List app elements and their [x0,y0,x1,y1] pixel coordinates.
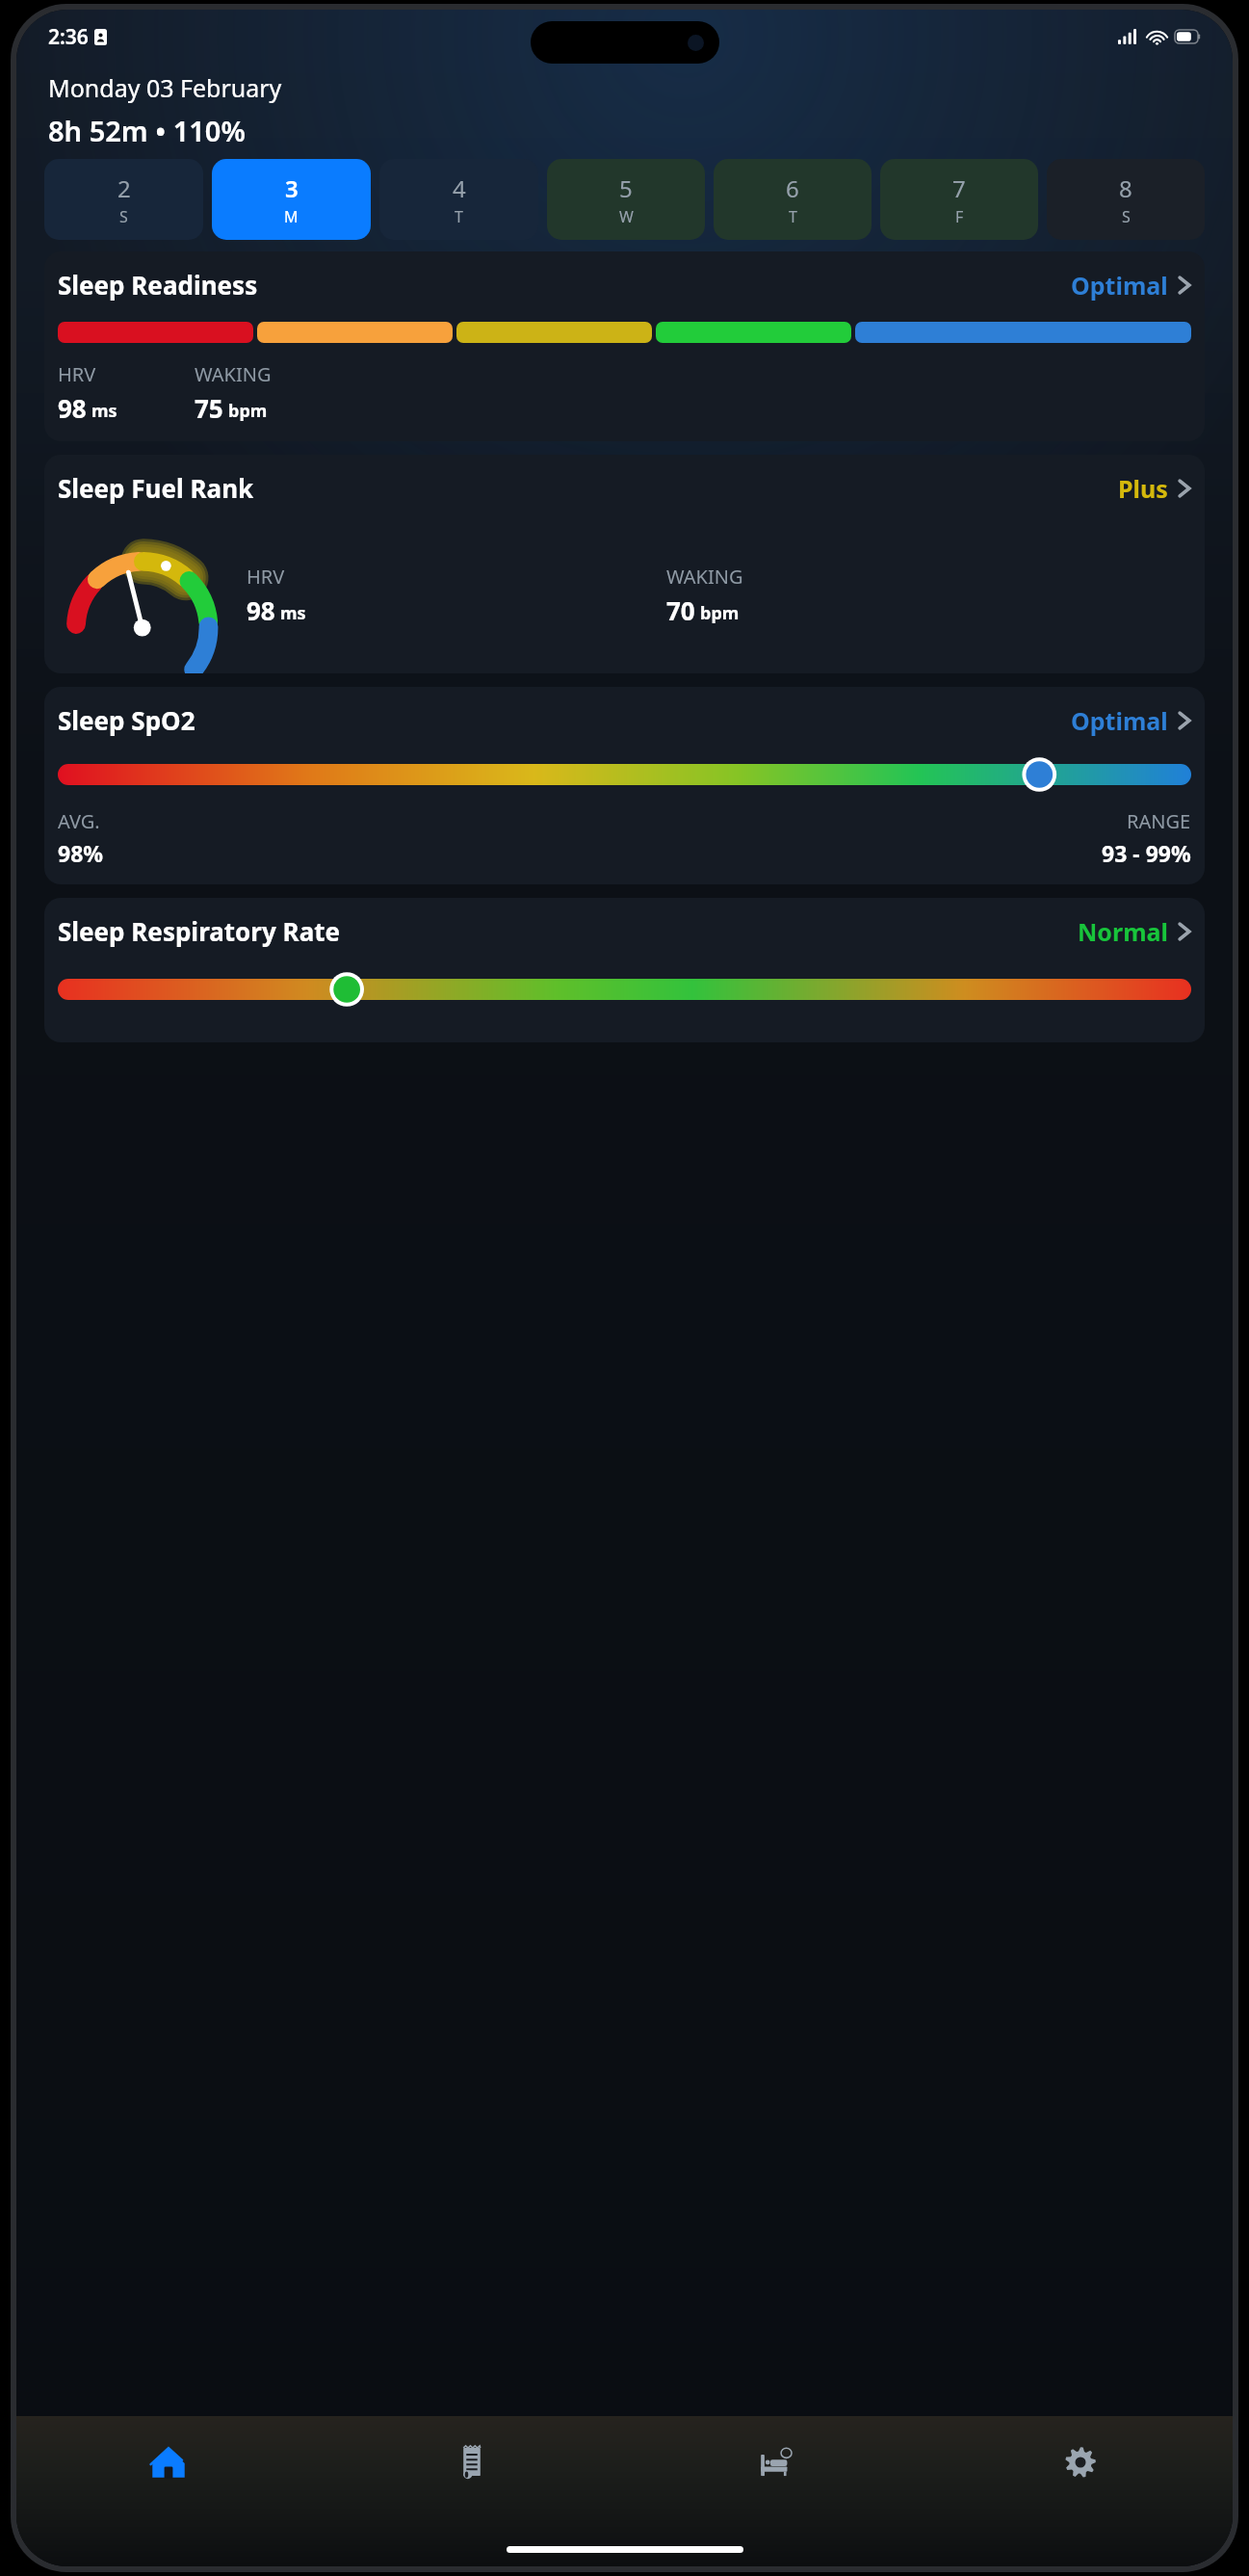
staticText: 98% [58,838,104,868]
staticText: 98 [247,593,275,627]
staticText: ms [280,601,306,625]
staticText: 3 [285,172,299,204]
button[interactable]: Sleep Readiness [44,251,1205,441]
staticText: Plus [1118,472,1168,505]
staticText: WAKING [195,361,272,387]
button[interactable]: Sleep AI [624,2416,928,2509]
staticText: Normal [1078,915,1168,948]
button[interactable]: 6 [714,159,872,240]
button[interactable]: 3 [212,159,371,240]
staticText: Optimal [1071,269,1168,302]
staticText: bpm [700,601,740,625]
staticText: 70 [666,593,695,627]
staticText: T [455,206,463,227]
button[interactable]: 7 [880,159,1038,240]
staticText: Optimal [1071,704,1168,737]
button[interactable]: Reports [320,2416,624,2509]
staticText: 7 [952,172,966,204]
staticText: 2 [117,172,131,204]
staticText: Sleep Respiratory Rate [58,914,1078,948]
staticText: 6 [786,172,799,204]
staticText: 75 [195,391,223,425]
staticText: Sleep Fuel Rank [58,471,1118,505]
staticText: 93 - 99% [1102,838,1191,868]
staticText: ms [91,399,117,423]
staticText: bpm [228,399,268,423]
staticText: 8 [1119,172,1132,204]
staticText: S [1122,206,1131,227]
staticText: WAKING [666,564,743,590]
button[interactable]: Sleep Respiratory Rate [44,898,1205,1042]
staticText: 2:36 [48,23,89,51]
staticText: T [789,206,797,227]
button[interactable]: Sleep SpO2 [44,687,1205,884]
button[interactable]: Sleep Fuel Rank [44,455,1205,673]
staticText: Sleep SpO2 [58,703,1071,737]
staticText: 5 [619,172,633,204]
staticText: M [284,206,299,227]
button[interactable]: 2 [44,159,203,240]
staticText: 8h 52m • 110% [48,112,246,149]
staticText: AVG. [58,808,100,834]
button[interactable]: Home [16,2416,320,2509]
staticText: Monday 03 February [48,71,282,104]
staticText: S [119,206,128,227]
staticText: F [955,206,964,227]
staticText: HRV [247,564,285,590]
staticText: 4 [453,172,466,204]
button[interactable]: 8 [1047,159,1205,240]
staticText: RANGE [1127,808,1191,834]
staticText: Sleep Readiness [58,268,1071,302]
button[interactable]: 4 [379,159,538,240]
staticText: HRV [58,361,96,387]
staticText: W [619,206,634,227]
button[interactable]: 5 [547,159,705,240]
staticText: 98 [58,391,87,425]
button[interactable]: Settings [928,2416,1233,2509]
